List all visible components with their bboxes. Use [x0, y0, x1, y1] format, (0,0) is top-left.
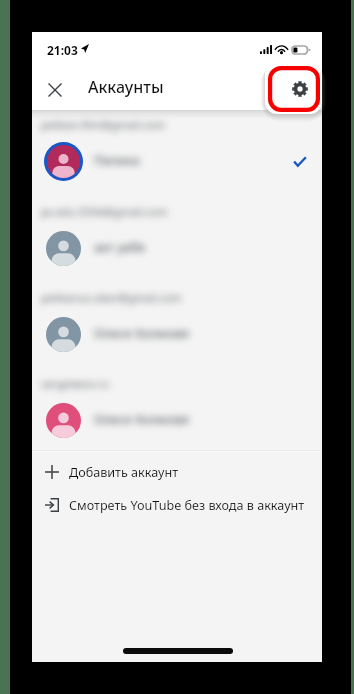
button[interactable]: Добавить аккаунт [32, 456, 322, 488]
staticText: pelikanus.ober@gmail.com [41, 290, 182, 305]
staticText: Аккаунты [88, 76, 164, 98]
staticText: pv.edu.5556@gmail.com [41, 204, 168, 219]
staticText: ает уебя [94, 239, 146, 256]
staticText: Смотреть YouTube без входа в аккаунт [69, 497, 305, 514]
button[interactable]: pelikan.film@gmail.com [32, 118, 322, 204]
staticText: 21:03 [47, 42, 78, 58]
staticText: Олеся Холмовя [94, 325, 189, 342]
staticText: Добавить аккаунт [69, 464, 179, 481]
staticText: Олеся Холмовя [94, 411, 189, 428]
staticText: sergeiwoo.ru [41, 376, 109, 391]
button[interactable]: sergeiwoo.ru [32, 377, 322, 463]
staticText: pelikan.film@gmail.com [41, 117, 166, 132]
button[interactable]: Смотреть YouTube без входа в аккаунт [32, 489, 322, 521]
button[interactable]: Настройки [268, 66, 320, 112]
button[interactable]: Закрыть [35, 70, 75, 110]
button[interactable]: pelikanus.ober@gmail.com [32, 291, 322, 377]
staticText: Пелика [94, 152, 140, 169]
button[interactable]: pv.edu.5556@gmail.com [32, 205, 322, 291]
